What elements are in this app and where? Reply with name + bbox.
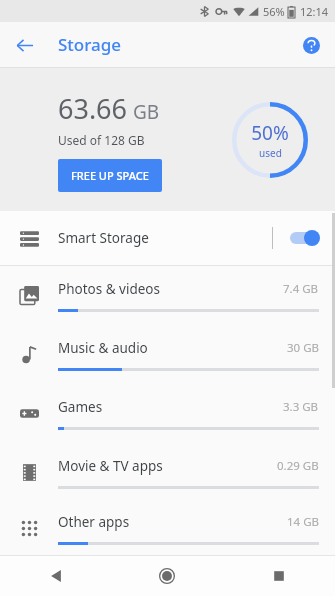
staticText: Movie & TV apps [58, 457, 277, 475]
staticText: 30 GB [287, 340, 319, 356]
button[interactable]: Home [111, 556, 223, 596]
button[interactable]: Smart Storage toggle, on [273, 211, 335, 265]
staticText: GB [133, 99, 160, 125]
button[interactable]: Games [0, 384, 335, 443]
staticText: 12:14 [300, 4, 329, 19]
button[interactable]: Movie & TV apps [0, 443, 335, 502]
button[interactable]: Other apps [0, 502, 335, 555]
button[interactable]: FREE UP SPACE [58, 159, 162, 192]
button[interactable]: Back [0, 556, 111, 596]
staticText: Other apps [58, 513, 287, 531]
staticText: 63.66 [58, 90, 128, 127]
staticText: 50% [251, 120, 289, 146]
staticText: 14 GB [287, 514, 319, 530]
button[interactable]: Back [8, 29, 40, 61]
staticText: Smart Storage [58, 229, 272, 247]
staticText: 0.29 GB [277, 458, 319, 474]
staticText: used [259, 146, 282, 160]
staticText: Used of 128 GB [58, 132, 145, 148]
staticText: 56% [263, 4, 285, 19]
staticText: 3.3 GB [283, 399, 319, 415]
button[interactable]: Smart Storage [0, 211, 335, 265]
staticText: Games [58, 398, 283, 416]
button[interactable]: Music & audio [0, 325, 335, 384]
staticText: Music & audio [58, 339, 287, 357]
button[interactable]: Recent apps [223, 556, 335, 596]
button[interactable]: Photos & videos [0, 266, 335, 325]
staticText: Photos & videos [58, 280, 283, 298]
staticText: Storage [58, 33, 122, 56]
staticText: 7.4 GB [283, 281, 319, 297]
button[interactable]: Help [296, 30, 326, 60]
staticText: FREE UP SPACE [71, 168, 149, 183]
